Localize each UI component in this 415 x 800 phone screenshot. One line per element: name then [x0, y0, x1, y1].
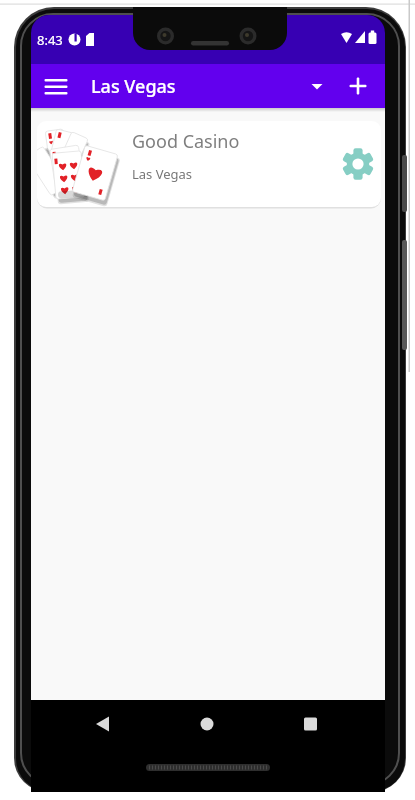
staticText: 8:43 [37, 31, 63, 49]
button[interactable] [149, 700, 267, 748]
button[interactable] [307, 76, 327, 96]
button[interactable] [31, 700, 149, 748]
button[interactable] [345, 73, 371, 99]
staticText: Las Vegas [132, 165, 193, 183]
button[interactable] [342, 148, 374, 180]
button[interactable]: Good Casino [37, 121, 381, 207]
staticText: Las Vegas [91, 74, 176, 99]
button[interactable] [267, 700, 385, 748]
button[interactable] [44, 74, 68, 98]
staticText: Good Casino [132, 129, 240, 154]
